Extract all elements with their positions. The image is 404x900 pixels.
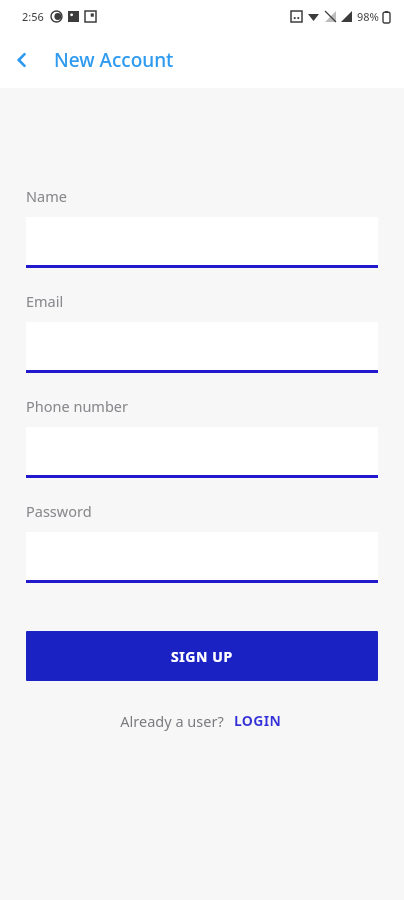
button[interactable] <box>26 532 378 583</box>
button[interactable]: SIGN UP <box>26 631 378 681</box>
staticText: New Account <box>54 47 174 73</box>
button[interactable] <box>26 427 378 478</box>
staticText: Email <box>26 291 64 311</box>
button[interactable] <box>26 322 378 373</box>
button[interactable]: Back <box>0 38 44 82</box>
button[interactable] <box>26 217 378 268</box>
button[interactable]: LOGIN <box>232 709 284 732</box>
staticText: Name <box>26 186 67 206</box>
staticText: LOGIN <box>234 711 282 730</box>
staticText: 98% <box>357 9 379 24</box>
staticText: Phone number <box>26 396 128 416</box>
staticText: SIGN UP <box>171 647 233 666</box>
staticText: Already a user? <box>120 711 224 731</box>
staticText: 2:56 <box>22 9 44 24</box>
staticText: Password <box>26 501 92 521</box>
